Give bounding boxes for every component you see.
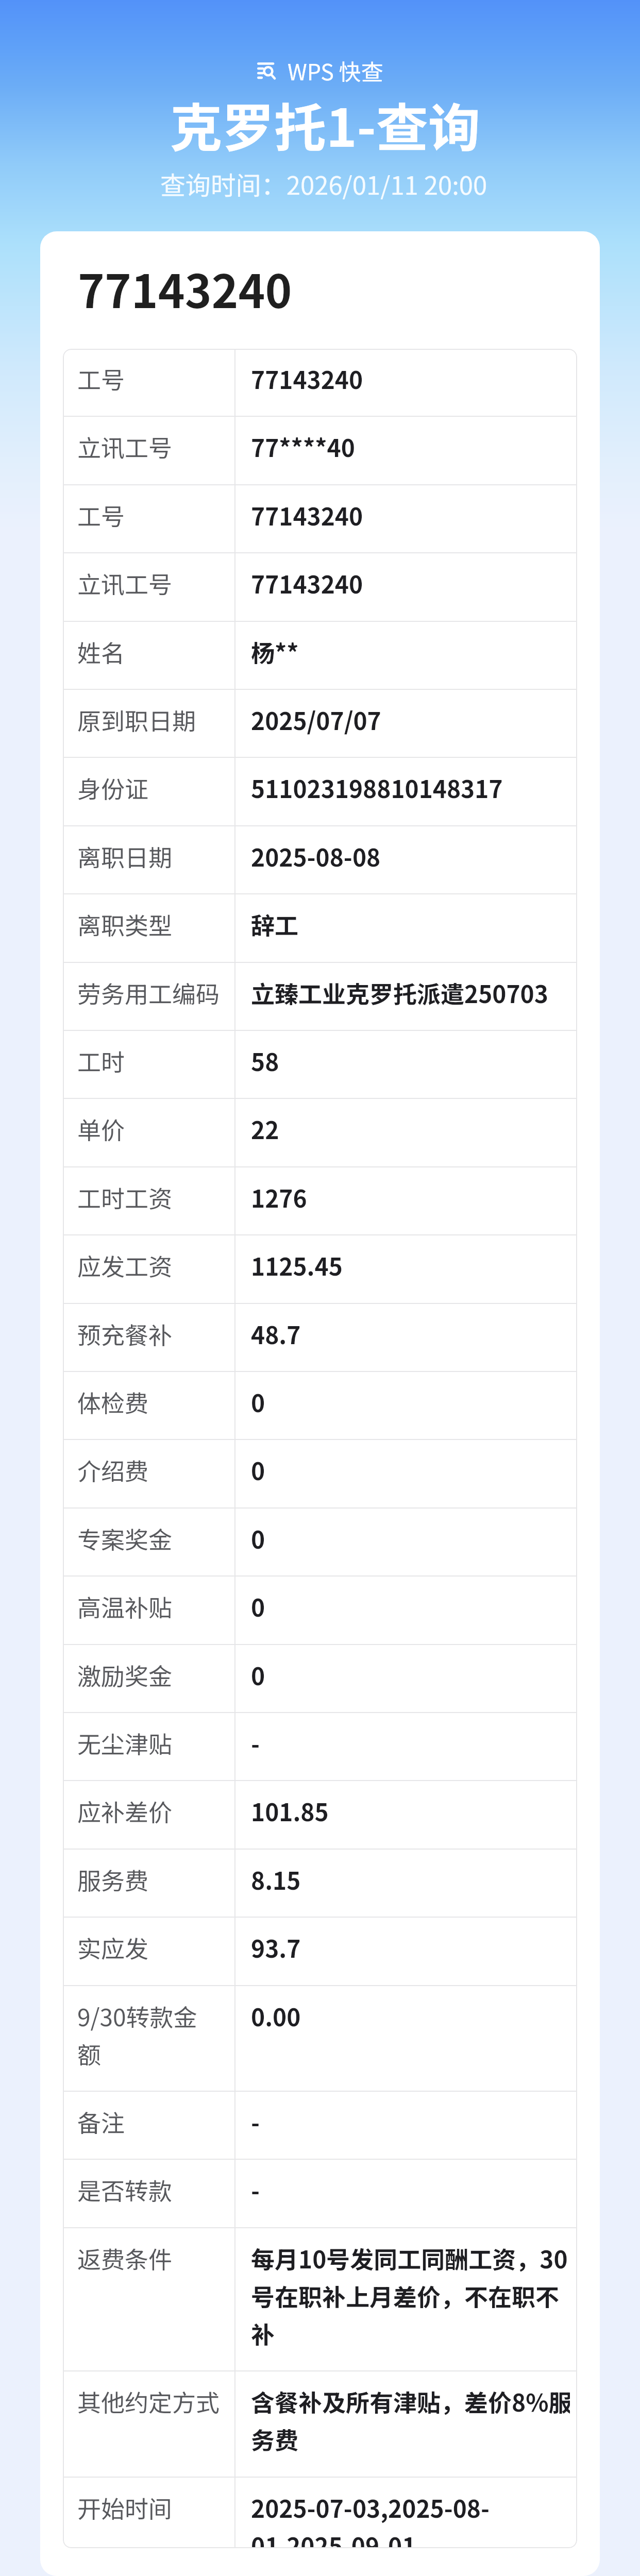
staticText: 2025-08-08 [251, 837, 381, 874]
staticText: 101.85 [251, 1791, 329, 1829]
staticText: 预充餐补 [77, 1314, 172, 1352]
staticText: 专案奖金 [77, 1519, 172, 1556]
staticText: 激励奖金 [77, 1655, 172, 1693]
staticText: 77****40 [251, 427, 355, 465]
staticText: 22 [251, 1109, 279, 1147]
staticText: 实应发 [77, 1928, 148, 1965]
button[interactable]: 是否转款 [63, 2160, 577, 2227]
button[interactable]: 实应发 [63, 1918, 577, 1985]
staticText: 辞工 [251, 905, 298, 942]
staticText: 2025/07/07 [251, 700, 381, 738]
button[interactable]: 体检费 [63, 1372, 577, 1439]
staticText: 开始时间 [77, 2488, 172, 2526]
button[interactable]: 高温补贴 [63, 1577, 577, 1644]
button[interactable]: 姓名 [63, 622, 577, 689]
button[interactable]: 介绍费 [63, 1440, 577, 1507]
other: WPS Quick Query [257, 61, 276, 80]
button[interactable]: 开始时间 [63, 2478, 577, 2548]
button[interactable]: 服务费 [63, 1850, 577, 1917]
button[interactable]: 原到职日期 [63, 690, 577, 757]
button[interactable]: 无尘津贴 [63, 1713, 577, 1780]
staticText: 体检费 [77, 1382, 148, 1420]
button[interactable]: 离职日期 [63, 826, 577, 893]
staticText: 立臻工业克罗托派遣250703 [251, 973, 548, 1011]
button[interactable]: 返费条件 [63, 2228, 577, 2370]
button[interactable]: 单价 [63, 1099, 577, 1166]
staticText: 单价 [77, 1109, 125, 1147]
staticText: - [251, 2170, 260, 2208]
staticText: 工号 [77, 359, 125, 397]
button[interactable]: 预充餐补 [63, 1304, 577, 1371]
staticText: 2025-07-03,2025-08- 01,2025-09-01 [251, 2488, 490, 2548]
staticText: 58 [251, 1041, 279, 1079]
staticText: 含餐补及所有津贴，差价8%服 务费 [251, 2382, 570, 2457]
staticText: 9/30转款金 额 [77, 1996, 197, 2072]
button[interactable]: 立讯工号 [63, 553, 577, 621]
staticText: 是否转款 [77, 2170, 172, 2208]
staticText: 0.00 [251, 1996, 301, 2034]
staticText: 1276 [251, 1178, 307, 1215]
staticText: - [251, 1723, 260, 1761]
staticText: 每月10号发同工同酬工资，30 号在职补上月差价，不在职不 补 [251, 2239, 568, 2351]
button[interactable]: 身份证 [63, 758, 577, 825]
button[interactable]: 9/30转款金 额 [63, 1986, 577, 2091]
staticText: 立讯工号 [77, 564, 172, 601]
staticText: 0 [251, 1655, 265, 1693]
button[interactable]: 应发工资 [63, 1235, 577, 1303]
button[interactable]: 其他约定方式 [63, 2371, 577, 2477]
staticText: 身份证 [77, 768, 148, 806]
staticText: 0 [251, 1519, 265, 1556]
staticText: 立讯工号 [77, 427, 172, 465]
staticText: 0 [251, 1450, 265, 1488]
button[interactable]: 立讯工号 [63, 417, 577, 484]
staticText: 48.7 [251, 1314, 301, 1352]
staticText: 备注 [77, 2102, 125, 2140]
button[interactable]: 专案奖金 [63, 1509, 577, 1575]
staticText: 离职类型 [77, 905, 172, 942]
staticText: 无尘津贴 [77, 1723, 172, 1761]
staticText: 93.7 [251, 1928, 301, 1965]
staticText: 离职日期 [77, 837, 172, 874]
staticText: 77143240 [251, 359, 363, 397]
staticText: 工号 [77, 496, 125, 533]
staticText: 511023198810148317 [251, 768, 503, 806]
staticText: 77143240 [251, 496, 363, 533]
staticText: 返费条件 [77, 2239, 172, 2276]
staticText: 原到职日期 [77, 700, 196, 738]
staticText: WPS 快查 [288, 55, 383, 87]
staticText: 1125.45 [251, 1246, 343, 1283]
staticText: 77143240 [78, 256, 292, 321]
staticText: 查询时间：2026/01/11 20:00 [4, 165, 640, 202]
staticText: 8.15 [251, 1860, 301, 1897]
staticText: 姓名 [77, 632, 125, 670]
button[interactable]: 离职类型 [63, 894, 577, 962]
button[interactable]: 应补差价 [63, 1781, 577, 1849]
staticText: 克罗托1-查询 [5, 87, 640, 162]
button[interactable]: 备注 [63, 2092, 577, 2159]
staticText: 介绍费 [77, 1450, 148, 1488]
button[interactable]: 工号 [63, 485, 577, 552]
staticText: 高温补贴 [77, 1587, 172, 1624]
staticText: 杨** [251, 632, 299, 670]
staticText: 工时工资 [77, 1178, 172, 1215]
staticText: - [251, 2102, 260, 2140]
button[interactable]: 工号 [63, 349, 577, 416]
button[interactable]: 工时 [63, 1031, 577, 1098]
staticText: 0 [251, 1587, 265, 1624]
staticText: 77143240 [251, 564, 363, 601]
button[interactable]: 工时工资 [63, 1167, 577, 1234]
staticText: 服务费 [77, 1860, 148, 1897]
staticText: 0 [251, 1382, 265, 1420]
staticText: 劳务用工编码 [77, 973, 220, 1011]
staticText: 工时 [77, 1041, 125, 1079]
button[interactable]: 劳务用工编码 [63, 963, 577, 1030]
staticText: 应发工资 [77, 1246, 172, 1283]
staticText: 其他约定方式 [77, 2382, 220, 2419]
button[interactable]: 激励奖金 [63, 1645, 577, 1712]
staticText: 应补差价 [77, 1791, 172, 1829]
